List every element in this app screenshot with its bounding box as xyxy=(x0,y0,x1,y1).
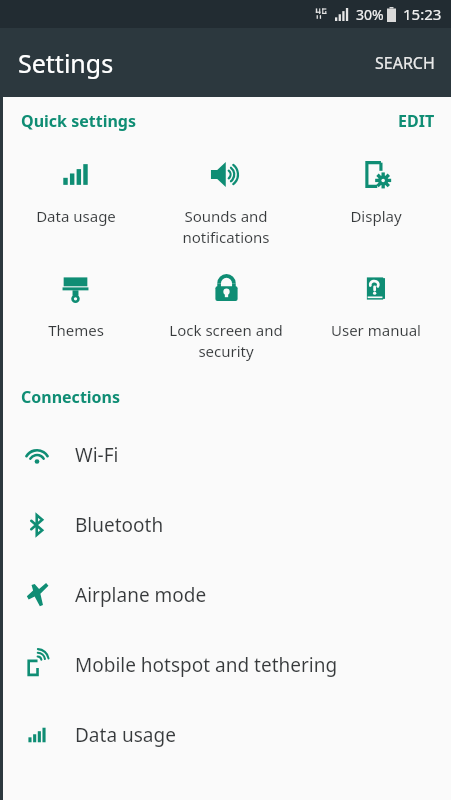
staticText: Quick settings xyxy=(21,110,136,132)
button[interactable]: EDIT xyxy=(382,102,451,140)
other: Sounds and notifications xyxy=(208,156,245,193)
button[interactable]: Bluetooth xyxy=(0,490,451,560)
button[interactable]: Data usage xyxy=(0,700,451,770)
button[interactable]: Display xyxy=(301,154,451,228)
staticText: Connections xyxy=(21,386,121,408)
other: User manual xyxy=(358,270,395,307)
staticText: Data usage xyxy=(75,722,176,748)
staticText: Lock screen and security xyxy=(169,320,283,362)
other: Data usage xyxy=(57,156,94,193)
staticText: Mobile hotspot and tethering xyxy=(75,652,338,678)
other: Themes xyxy=(57,270,94,307)
staticText: Wi-Fi xyxy=(75,442,119,468)
staticText: 15:23 xyxy=(403,4,442,24)
staticText: User manual xyxy=(331,320,421,340)
staticText: EDIT xyxy=(398,110,435,132)
button[interactable]: Mobile hotspot and tethering xyxy=(0,630,451,700)
button[interactable]: Lock screen and security xyxy=(151,268,301,364)
button[interactable]: Sounds and notifications xyxy=(151,154,301,250)
button[interactable]: Themes xyxy=(0,268,151,342)
other: Lock screen and security xyxy=(208,270,245,307)
button[interactable]: User manual xyxy=(301,268,451,342)
staticText: Data usage xyxy=(36,206,116,226)
staticText: Bluetooth xyxy=(75,512,164,538)
other: Display xyxy=(358,156,395,193)
staticText: Themes xyxy=(48,320,104,340)
staticText: Display xyxy=(350,206,402,226)
button[interactable]: Wi-Fi xyxy=(0,420,451,490)
staticText: Sounds and notifications xyxy=(182,206,270,248)
button[interactable]: Data usage xyxy=(0,154,151,228)
staticText: SEARCH xyxy=(375,52,435,74)
staticText: Airplane mode xyxy=(75,582,207,608)
staticText: 30% xyxy=(356,5,384,24)
button[interactable]: SEARCH xyxy=(359,28,451,97)
staticText: Settings xyxy=(18,46,114,80)
button[interactable]: Airplane mode xyxy=(0,560,451,630)
